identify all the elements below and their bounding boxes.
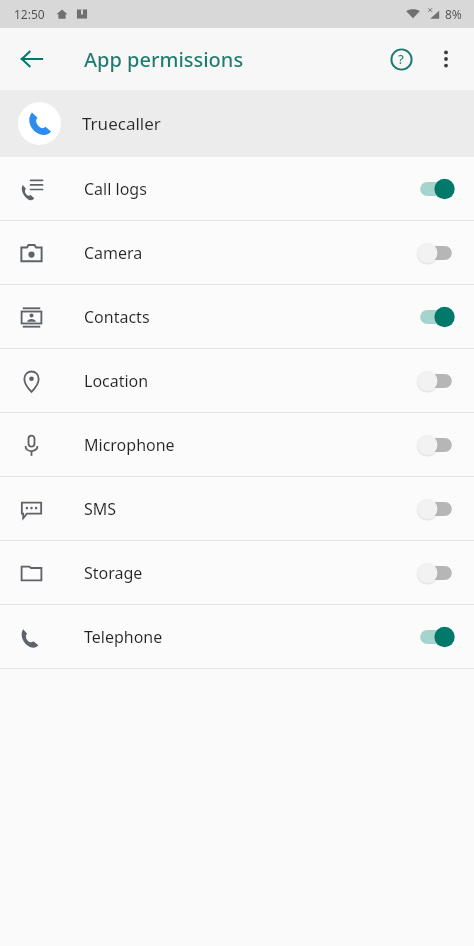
staticText: Truecaller [82, 112, 161, 135]
staticText: ? [398, 50, 404, 68]
button[interactable]: Telephone [0, 605, 474, 668]
staticText: 12:50 [14, 6, 45, 22]
staticText: Call logs [84, 178, 147, 200]
button[interactable]: Contacts [0, 285, 474, 348]
button[interactable]: Microphone [0, 413, 474, 476]
staticText: Location [84, 370, 149, 392]
button[interactable]: Call logs [0, 157, 474, 220]
staticText: Camera [84, 242, 143, 264]
staticText: Contacts [84, 306, 150, 328]
button[interactable]: Back [8, 35, 56, 83]
button[interactable]: Truecaller [0, 90, 474, 157]
staticText: SMS [84, 498, 117, 520]
staticText: Telephone [84, 626, 163, 648]
staticText: 8% [445, 6, 462, 22]
button[interactable]: Help [378, 36, 424, 82]
staticText: App permissions [84, 46, 244, 73]
staticText: Storage [84, 562, 143, 584]
button[interactable]: Camera [0, 221, 474, 284]
staticText: Microphone [84, 434, 175, 456]
button[interactable]: Location [0, 349, 474, 412]
button[interactable]: More options [424, 37, 468, 81]
button[interactable]: Storage [0, 541, 474, 604]
button[interactable]: SMS [0, 477, 474, 540]
